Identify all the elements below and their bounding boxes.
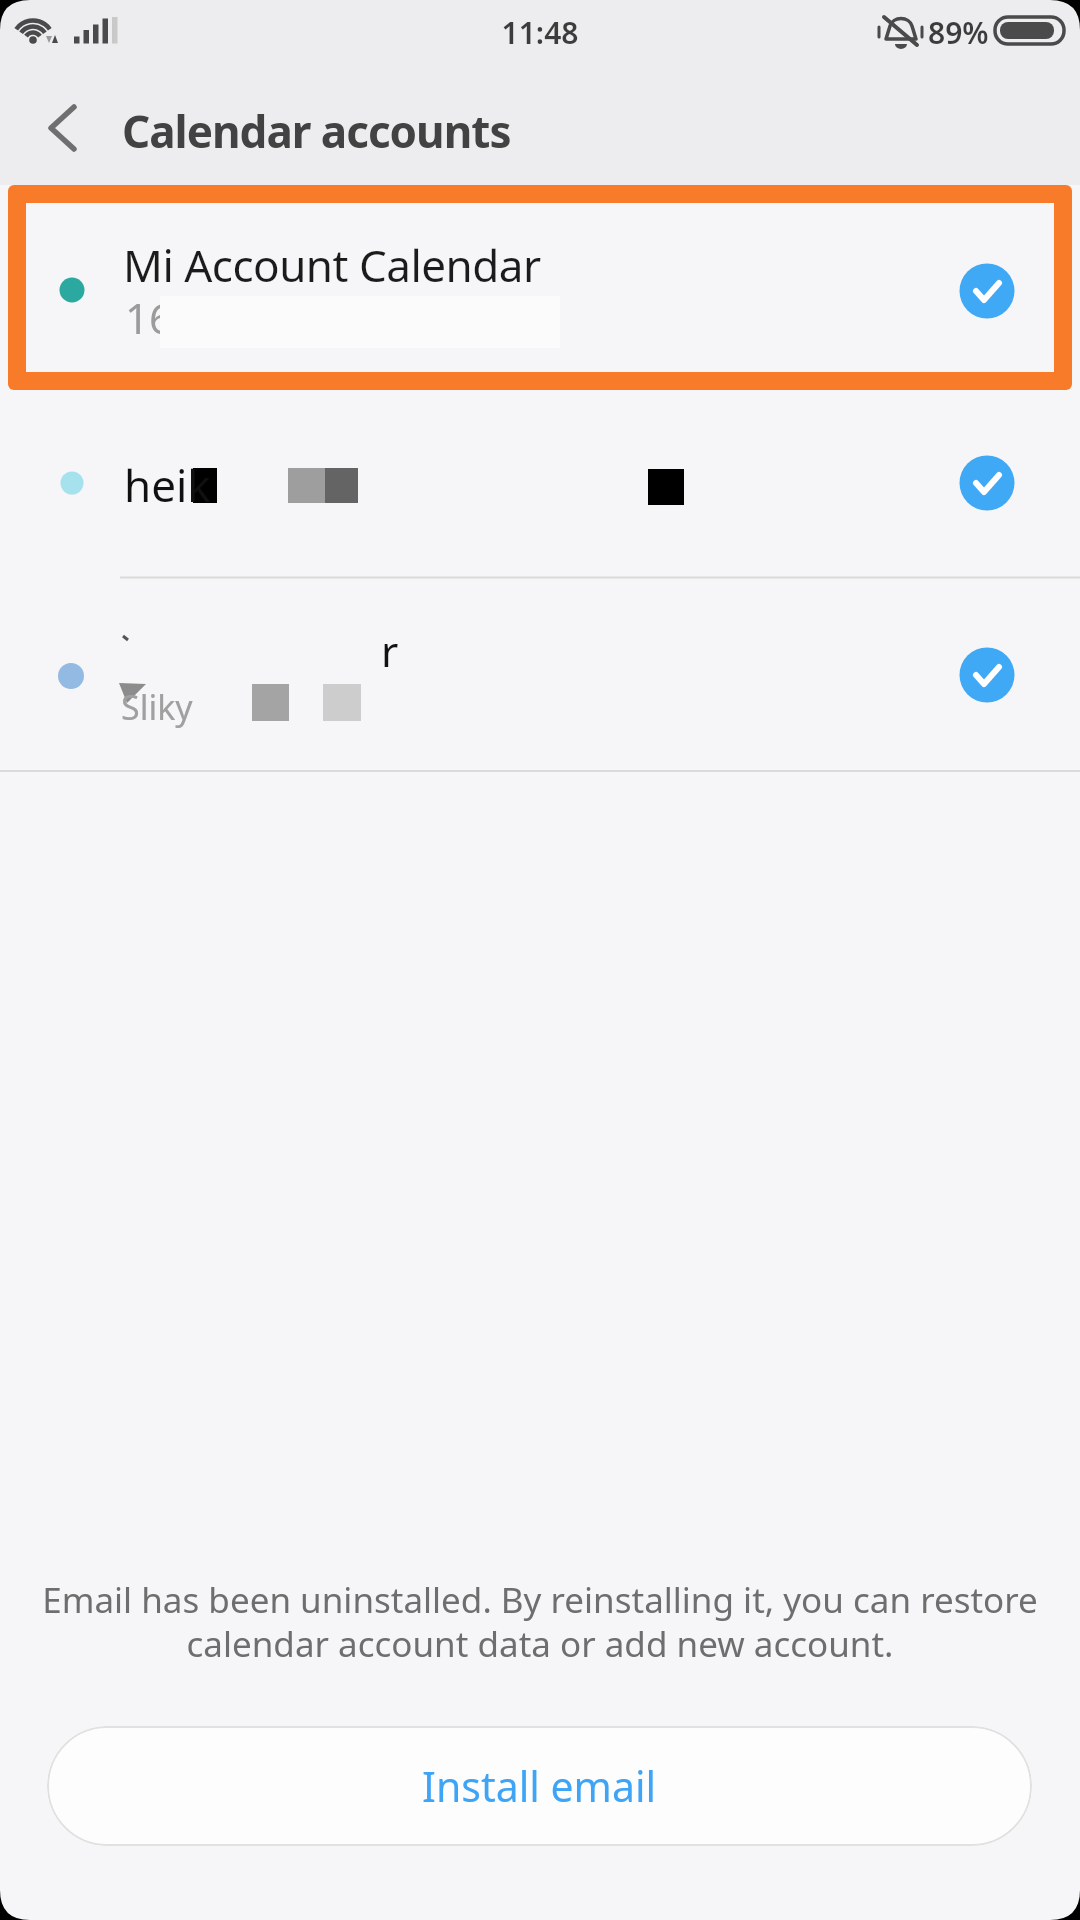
staticText: Calendar accounts (122, 101, 511, 161)
staticText: calendar account data or add new account… (0, 1620, 1080, 1668)
staticText: 11:48 (0, 12, 1080, 53)
staticText: Email has been uninstalled. By reinstall… (0, 1576, 1080, 1624)
button[interactable]: Install email (47, 1726, 1032, 1846)
staticText: heik (124, 455, 211, 515)
staticText: Install email (422, 1758, 657, 1814)
button[interactable] (0, 400, 1080, 577)
button[interactable] (30, 95, 100, 161)
staticText: 16 (125, 289, 174, 346)
staticText: 89% (928, 12, 989, 53)
staticText: Sliky (121, 684, 193, 730)
button[interactable] (0, 579, 1080, 771)
button[interactable] (8, 185, 1072, 390)
staticText: Mi Account Calendar (123, 235, 541, 295)
staticText: r (381, 622, 399, 679)
